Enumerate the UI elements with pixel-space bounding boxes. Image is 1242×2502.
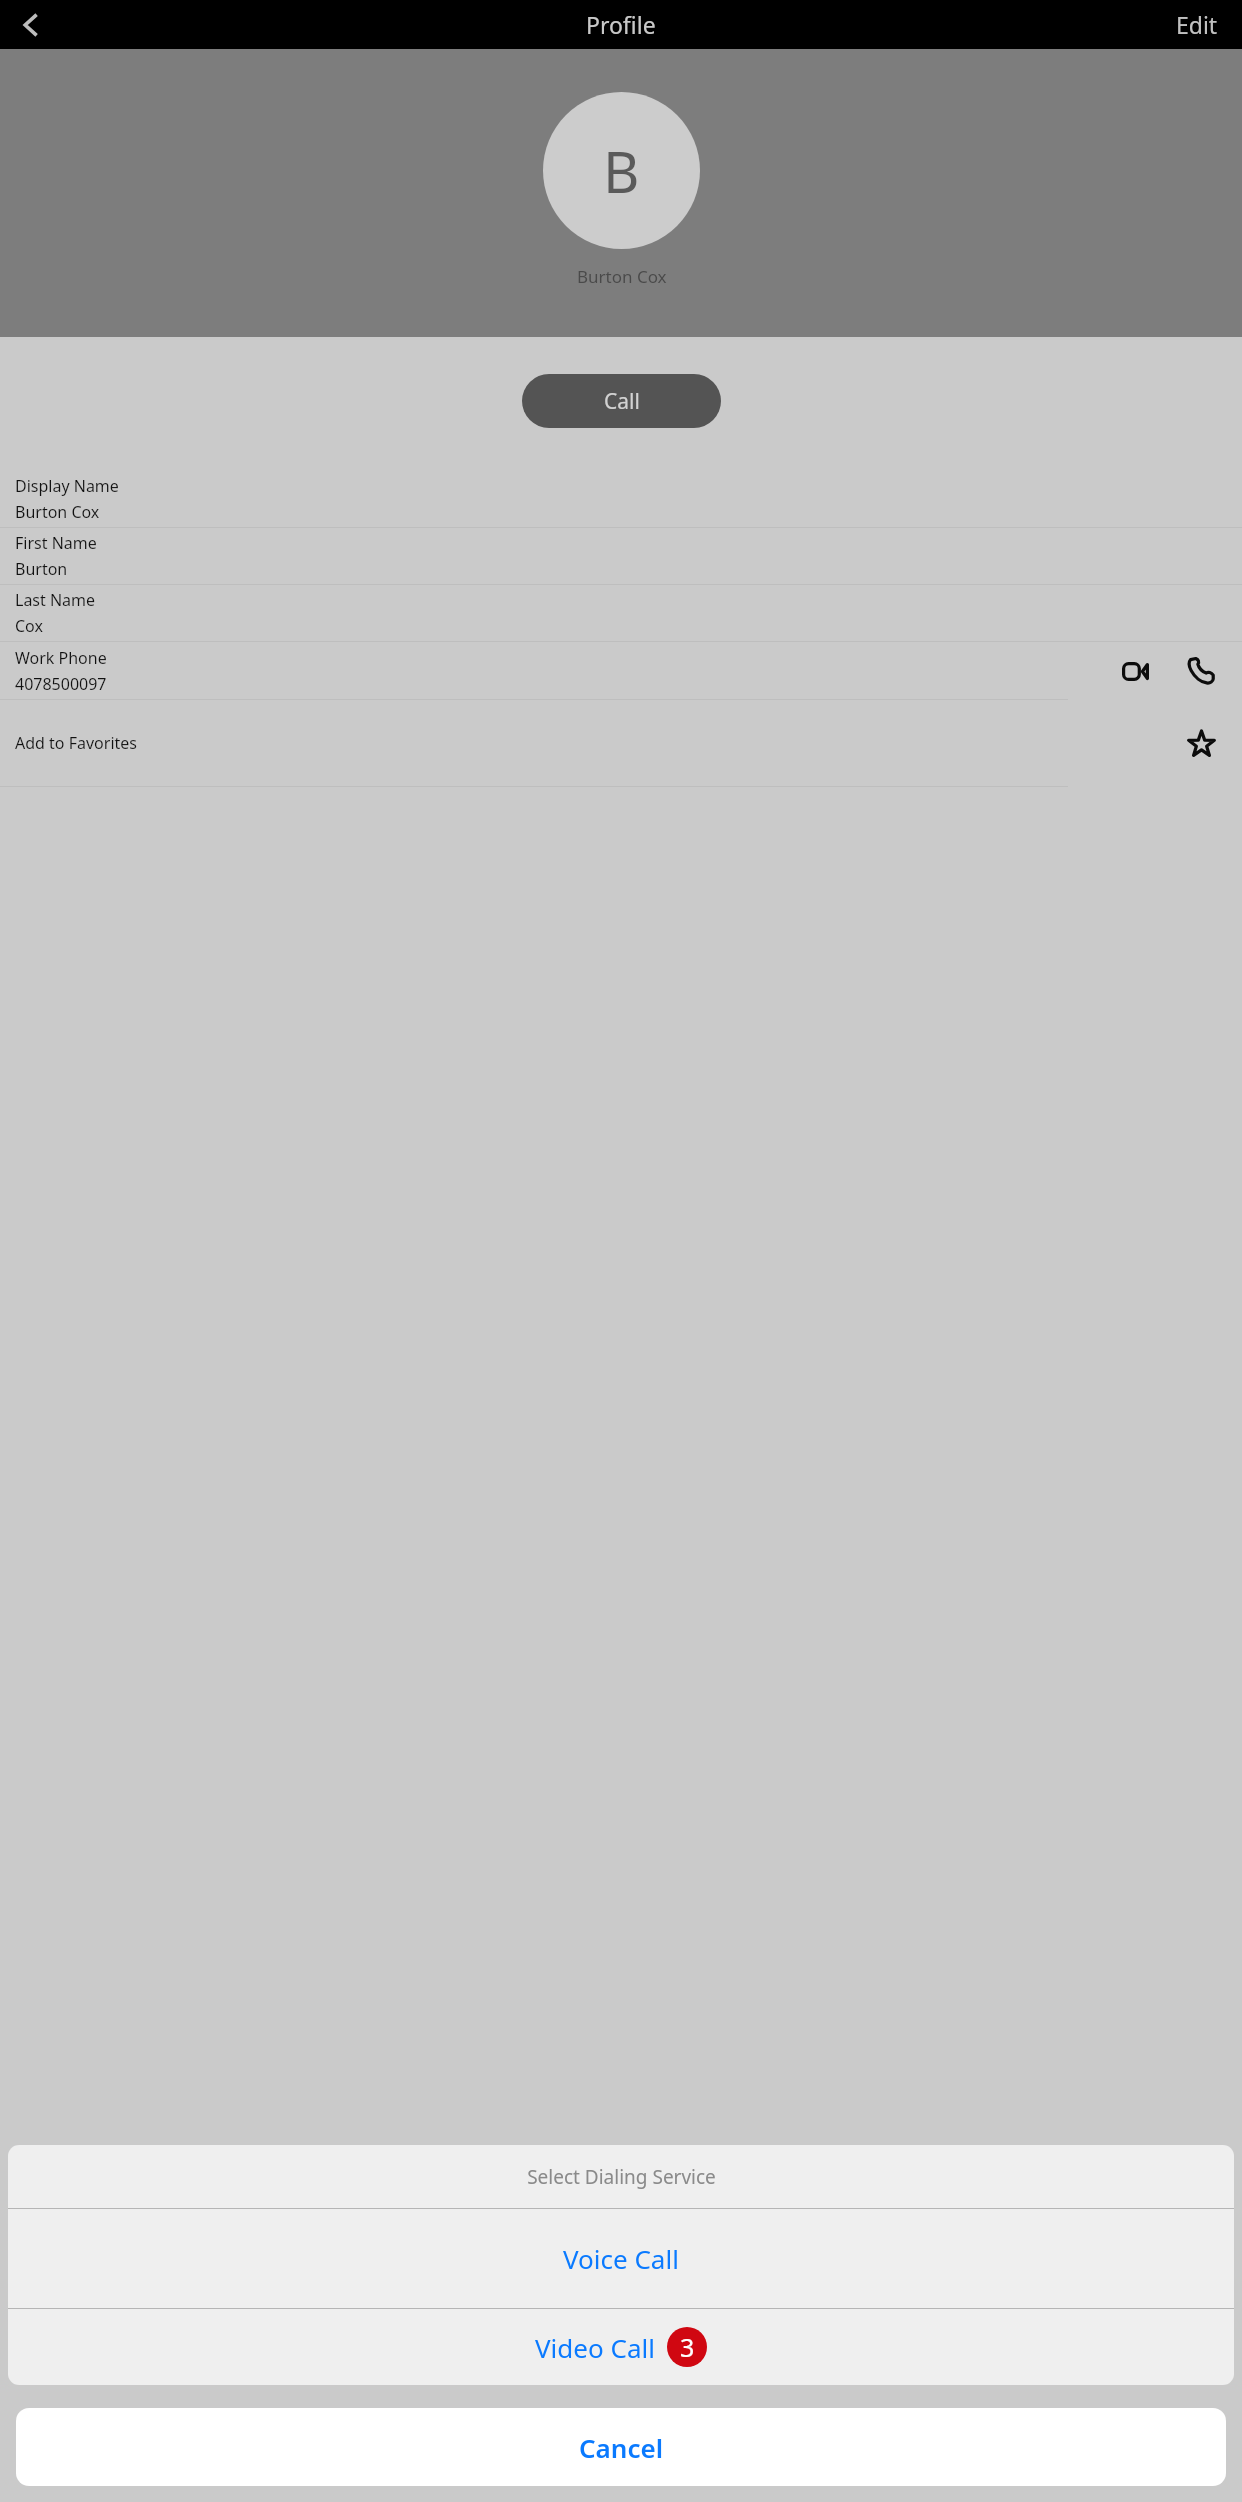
staticText: Cancel <box>579 2430 664 2465</box>
button[interactable]: Phone call <box>1178 648 1224 694</box>
staticText: B <box>603 133 640 209</box>
staticText: Call <box>604 387 640 416</box>
button[interactable]: First Name <box>0 528 1242 584</box>
staticText: Burton <box>15 558 68 580</box>
staticText: 3 <box>680 2330 695 2364</box>
staticText: Cox <box>15 615 43 637</box>
button[interactable]: Add to Favorites <box>0 700 1242 786</box>
staticText: Burton Cox <box>15 501 100 523</box>
button[interactable]: Add to favorites <box>1178 720 1224 766</box>
staticText: Video Call <box>535 2330 655 2365</box>
button[interactable]: Display Name <box>0 471 1242 527</box>
button[interactable]: Video Call <box>8 2309 1234 2385</box>
button[interactable]: Edit <box>1170 3 1224 46</box>
staticText: Select Dialing Service <box>527 2164 716 2190</box>
staticText: Add to Favorites <box>15 732 137 754</box>
button[interactable]: Work Phone <box>0 642 1242 699</box>
staticText: Voice Call <box>563 2241 679 2276</box>
staticText: Work Phone <box>15 647 107 669</box>
staticText: Burton Cox <box>577 265 667 288</box>
staticText: Last Name <box>15 589 96 611</box>
staticText: First Name <box>15 532 97 554</box>
button[interactable]: Cancel <box>16 2408 1226 2486</box>
staticText: Display Name <box>15 475 119 497</box>
button[interactable]: Last Name <box>0 585 1242 641</box>
staticText: Profile <box>586 9 656 40</box>
button[interactable]: Video call <box>1112 648 1158 694</box>
button[interactable]: Back <box>8 3 52 47</box>
button[interactable]: Voice Call <box>8 2209 1234 2308</box>
button[interactable]: Call <box>522 374 721 428</box>
staticText: Edit <box>1176 9 1218 40</box>
staticText: 4078500097 <box>15 673 107 695</box>
